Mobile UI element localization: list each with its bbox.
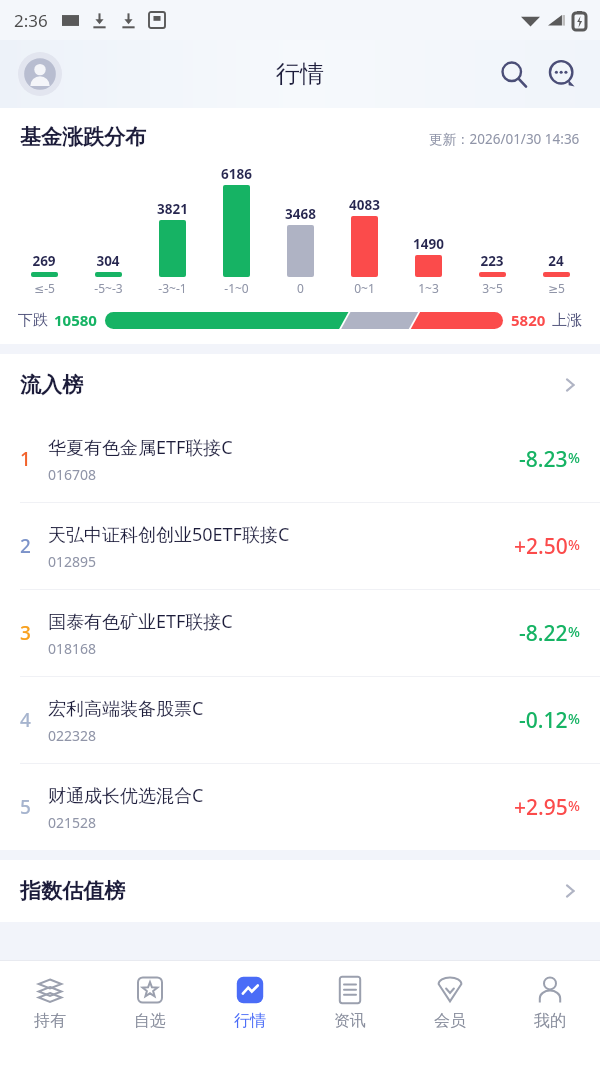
button[interactable]: 我的 [500,961,600,1066]
staticText: 10580 [54,310,97,330]
staticText: 上涨 [552,311,582,330]
staticText: 1490 [413,235,444,253]
staticText: ≤-5 [34,280,55,296]
staticText: 更新：2026/01/30 14:36 [429,130,580,148]
staticText: 华夏有色金属ETF联接C [48,435,233,460]
staticText: -3~-1 [158,280,187,296]
staticText: 持有 [34,1011,66,1031]
staticText: 0~1 [354,280,375,296]
button[interactable]: 行情 [200,961,300,1066]
staticText: 下跌 [18,311,48,330]
staticText: 3~5 [482,280,503,296]
staticText: 5820 [511,310,546,330]
staticText: 3821 [157,200,188,218]
staticText: 012895 [48,552,97,571]
staticText: 1 [20,446,31,472]
staticText: % [568,535,580,554]
staticText: 资讯 [334,1011,366,1031]
staticText: 行情 [234,1011,266,1031]
button[interactable]: Profile [18,52,62,96]
staticText: 223 [480,252,504,270]
button[interactable]: 1 [0,416,600,502]
staticText: +2.95 [514,793,568,822]
staticText: 4 [20,707,31,733]
staticText: 24 [548,252,564,270]
staticText: 宏利高端装备股票C [48,696,204,721]
staticText: 3468 [285,205,316,223]
staticText: 2 [20,533,31,559]
staticText: 流入榜 [20,372,83,398]
staticText: 我的 [534,1011,566,1031]
staticText: 6186 [221,165,252,183]
staticText: 天弘中证科创创业50ETF联接C [48,522,290,547]
staticText: -5~-3 [94,280,123,296]
button[interactable]: 流入榜 [0,354,600,416]
staticText: 国泰有色矿业ETF联接C [48,609,233,634]
staticText: 0 [297,280,304,296]
staticText: 018168 [48,639,97,658]
button[interactable]: 资讯 [300,961,400,1066]
staticText: -8.22 [519,619,568,648]
button[interactable]: 3 [0,590,600,676]
staticText: 行情 [276,59,324,89]
staticText: % [568,448,580,467]
staticText: 3 [20,620,31,646]
button[interactable]: 4 [0,677,600,763]
staticText: -1~0 [224,280,249,296]
staticText: 022328 [48,726,97,745]
button[interactable]: Messages [540,52,584,96]
staticText: 1~3 [418,280,439,296]
staticText: 会员 [434,1011,466,1031]
staticText: 4083 [349,196,380,214]
staticText: 自选 [134,1011,166,1031]
staticText: 基金涨跌分布 [20,124,146,150]
staticText: 016708 [48,465,97,484]
staticText: ≥5 [548,280,565,296]
staticText: 021528 [48,813,97,832]
button[interactable]: 会员 [400,961,500,1066]
staticText: % [568,796,580,815]
button[interactable]: Search [492,52,536,96]
staticText: 5 [20,794,31,820]
staticText: % [568,622,580,641]
staticText: 财通成长优选混合C [48,783,204,808]
staticText: 269 [32,252,56,270]
staticText: -0.12 [519,706,568,735]
staticText: 指数估值榜 [20,878,125,904]
staticText: 304 [96,252,120,270]
button[interactable]: 指数估值榜 [0,860,600,922]
button[interactable]: 持有 [0,961,100,1066]
staticText: -8.23 [519,445,568,474]
button[interactable]: 5 [0,764,600,850]
button[interactable]: 2 [0,503,600,589]
button[interactable]: 自选 [100,961,200,1066]
staticText: % [568,709,580,728]
staticText: 2:36 [14,9,48,32]
staticText: +2.50 [514,532,568,561]
